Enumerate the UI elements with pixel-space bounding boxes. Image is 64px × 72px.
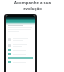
staticText: evolução	[23, 6, 42, 12]
staticText: Acompanhe a sua	[14, 0, 51, 6]
